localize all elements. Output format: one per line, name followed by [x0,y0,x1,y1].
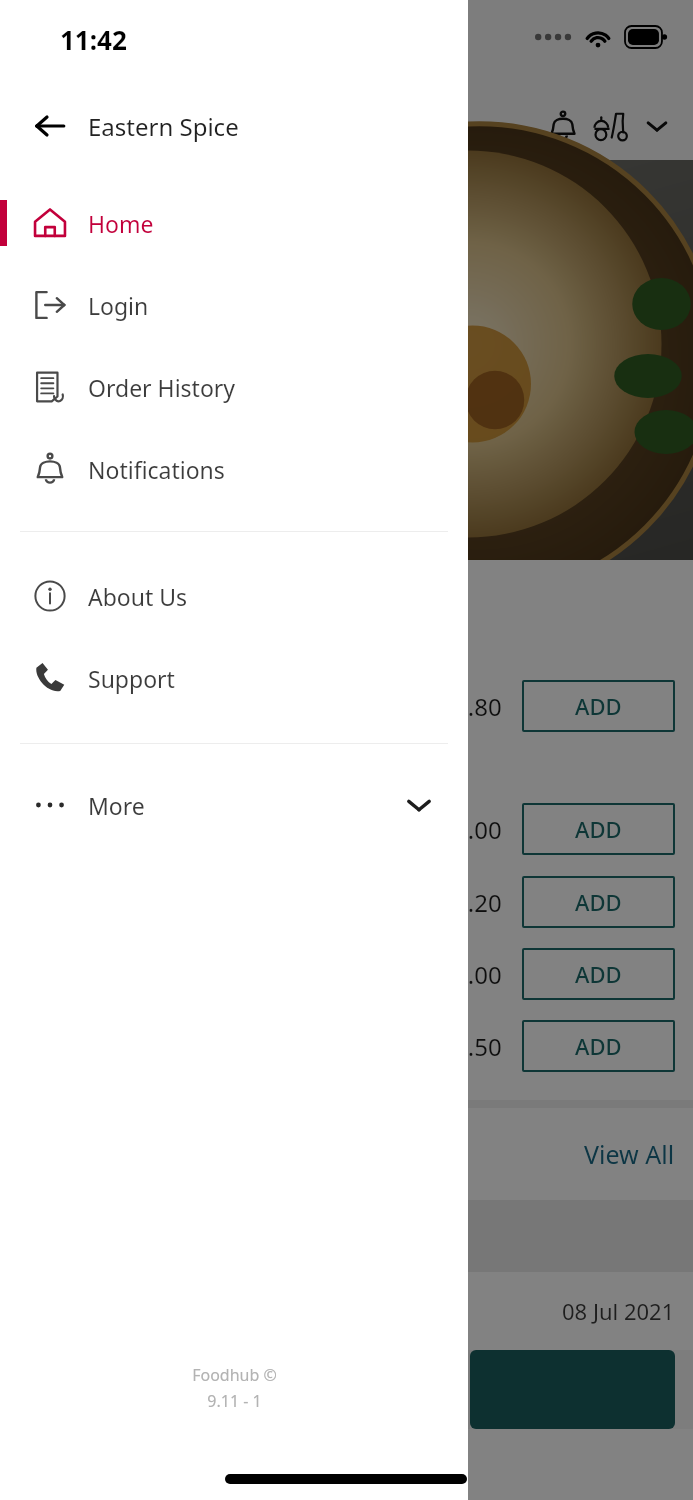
staticText: About Us [88,581,188,612]
button[interactable]: About Us [0,571,468,621]
staticText: Eastern Spice [88,110,239,143]
button[interactable]: ADD [522,1020,675,1072]
button[interactable]: Back [24,100,76,152]
staticText: Support [88,663,175,694]
button[interactable]: Delivery [587,102,635,150]
button[interactable]: ADD [522,680,675,732]
button[interactable]: Support [0,653,468,703]
staticText: Login [88,290,149,321]
button[interactable]: View All [584,1137,675,1171]
staticText: Notifications [88,454,225,485]
staticText: ADD [575,959,622,989]
staticText: More [88,790,145,821]
staticText: ADD [575,1031,622,1061]
button[interactable]: More [0,780,468,830]
staticText: Foodhub © [192,1364,277,1386]
staticText: 7.00 [454,958,502,991]
button[interactable]: Home [0,198,468,248]
staticText: ADD [575,691,622,721]
button[interactable]: Order History [0,362,468,412]
staticText: ADD [575,887,622,917]
button[interactable]: ADD [522,803,675,855]
staticText: 11:42 [60,22,127,57]
staticText: 5.80 [454,690,502,723]
staticText: Order History [88,372,236,403]
staticText: 4.50 [454,1030,502,1063]
button[interactable]: Expand [635,104,679,148]
button[interactable]: ADD [522,876,675,928]
staticText: 5.20 [454,886,502,919]
button[interactable]: Notifications [0,444,468,494]
button[interactable]: Login [0,280,468,330]
staticText: ADD [575,814,622,844]
staticText: Home [88,208,154,239]
staticText: 9.11 - 1 [207,1390,262,1412]
staticText: 5.00 [454,813,502,846]
staticText: 08 Jul 2021 [562,1296,675,1326]
button[interactable]: Checkout [470,1350,675,1429]
button[interactable]: Notifications [539,102,587,150]
button[interactable]: ADD [522,948,675,1000]
